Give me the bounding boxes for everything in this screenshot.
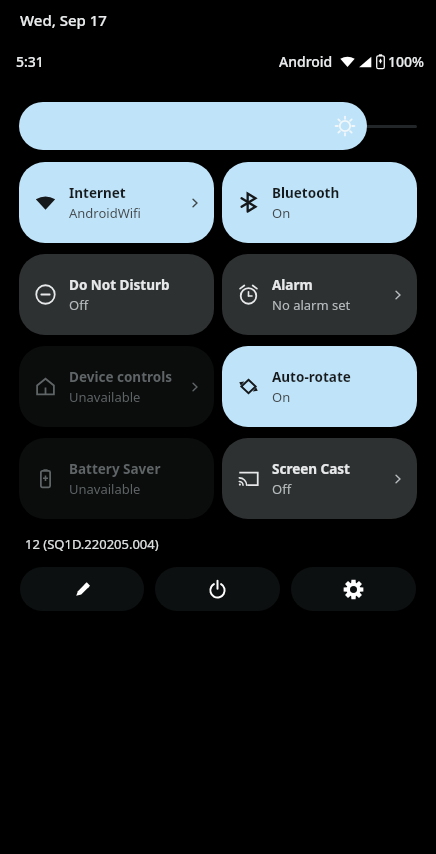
staticText: Android bbox=[279, 52, 333, 71]
button[interactable]: Battery Saver bbox=[19, 438, 214, 519]
staticText: Screen Cast bbox=[272, 460, 350, 478]
staticText: 12 (SQ1D.220205.004) bbox=[25, 535, 159, 553]
button[interactable]: Settings bbox=[291, 567, 416, 611]
button[interactable]: Do Not Disturb bbox=[19, 254, 214, 335]
staticText: Wed, Sep 17 bbox=[20, 10, 107, 30]
staticText: Off bbox=[272, 480, 292, 498]
button[interactable]: Power bbox=[155, 567, 280, 611]
staticText: Internet bbox=[69, 184, 126, 202]
staticText: Unavailable bbox=[69, 388, 141, 406]
staticText: Do Not Disturb bbox=[69, 276, 170, 294]
staticText: Off bbox=[69, 296, 89, 314]
staticText: Bluetooth bbox=[272, 184, 340, 202]
button[interactable]: Device controls bbox=[19, 346, 214, 427]
staticText: Battery Saver bbox=[69, 460, 161, 478]
button[interactable]: Internet bbox=[19, 162, 214, 243]
staticText: On bbox=[272, 204, 291, 222]
staticText: Auto-rotate bbox=[272, 368, 351, 386]
staticText: AndroidWifi bbox=[69, 204, 141, 222]
staticText: Device controls bbox=[69, 368, 172, 386]
button[interactable]: Edit bbox=[20, 567, 144, 611]
button[interactable] bbox=[19, 102, 367, 150]
staticText: Alarm bbox=[272, 276, 313, 294]
button[interactable]: Auto-rotate bbox=[222, 346, 417, 427]
staticText: Unavailable bbox=[69, 480, 141, 498]
staticText: 100% bbox=[388, 52, 424, 71]
staticText: No alarm set bbox=[272, 296, 351, 314]
staticText: On bbox=[272, 388, 291, 406]
staticText: 5:31 bbox=[16, 52, 44, 71]
button[interactable]: Screen Cast bbox=[222, 438, 417, 519]
button[interactable]: Alarm bbox=[222, 254, 417, 335]
button[interactable]: Bluetooth bbox=[222, 162, 417, 243]
